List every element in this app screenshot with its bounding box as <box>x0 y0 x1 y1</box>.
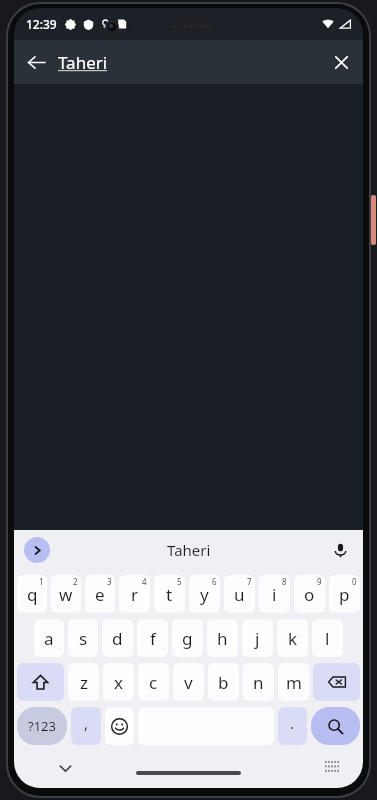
button[interactable]: Voice input <box>327 537 353 563</box>
staticText: h <box>217 627 228 650</box>
button[interactable]: ?123 <box>17 707 67 745</box>
button[interactable]: Taheri <box>153 534 225 566</box>
staticText: q <box>27 583 38 606</box>
button[interactable]: f <box>137 619 168 657</box>
button[interactable]: k <box>277 619 308 657</box>
staticText: f <box>150 627 156 650</box>
staticText: e <box>95 583 105 606</box>
button[interactable]: Backspace <box>313 663 360 701</box>
staticText: 7 <box>247 576 252 587</box>
staticText: 3 <box>107 576 112 587</box>
staticText: k <box>288 627 298 650</box>
staticText: 0 <box>352 576 357 587</box>
button[interactable]: y <box>189 575 220 613</box>
staticText: m <box>286 671 302 694</box>
staticText: w <box>59 583 73 606</box>
button[interactable]: a <box>34 619 64 657</box>
staticText: l <box>325 627 330 650</box>
staticText: g <box>182 627 193 650</box>
button[interactable]: b <box>208 663 239 701</box>
staticText: v <box>184 671 193 694</box>
staticText: i <box>272 583 277 606</box>
staticText: Taheri <box>58 51 108 74</box>
staticText: . <box>290 713 295 733</box>
staticText: 6 <box>212 576 217 587</box>
staticText: x <box>114 671 123 694</box>
button[interactable]: Emoji <box>105 707 134 745</box>
staticText: ?123 <box>28 717 56 735</box>
staticText: 1 <box>39 576 44 587</box>
staticText: s <box>79 627 88 650</box>
staticText: d <box>112 627 123 650</box>
staticText: 2 <box>73 576 78 587</box>
button[interactable]: Back <box>14 40 58 84</box>
button[interactable]: Shift <box>17 663 64 701</box>
staticText: , <box>84 713 89 733</box>
button[interactable]: h <box>207 619 238 657</box>
staticText: b <box>218 671 229 694</box>
button[interactable]: Search <box>311 707 360 745</box>
button[interactable]: g <box>172 619 203 657</box>
staticText: 12:39 <box>26 16 57 32</box>
staticText: Taheri <box>167 540 211 560</box>
staticText: 8 <box>282 576 287 587</box>
staticText: a <box>44 627 54 650</box>
staticText: o <box>304 583 315 606</box>
button[interactable]: i <box>259 575 290 613</box>
staticText: u <box>234 583 245 606</box>
staticText: j <box>255 627 260 650</box>
staticText: n <box>253 671 264 694</box>
button[interactable]: w <box>51 575 81 613</box>
button[interactable]: u <box>224 575 255 613</box>
button[interactable]: d <box>102 619 133 657</box>
button[interactable]: t <box>154 575 185 613</box>
button[interactable]: Switch keyboard <box>319 755 345 781</box>
button[interactable]: v <box>173 663 204 701</box>
button[interactable]: , <box>71 707 101 745</box>
button[interactable]: j <box>242 619 273 657</box>
button[interactable]: e <box>85 575 115 613</box>
button[interactable]: l <box>312 619 343 657</box>
button[interactable]: n <box>243 663 274 701</box>
button[interactable]: p <box>329 575 360 613</box>
button[interactable]: x <box>103 663 134 701</box>
button[interactable]: q <box>17 575 47 613</box>
staticText: y <box>200 583 209 606</box>
button[interactable]: m <box>278 663 309 701</box>
staticText: z <box>80 671 88 694</box>
staticText: 5 <box>177 576 182 587</box>
button[interactable]: Taheri <box>58 40 319 84</box>
button[interactable]: Clear <box>319 40 363 84</box>
button[interactable]: r <box>119 575 150 613</box>
button[interactable]: s <box>68 619 98 657</box>
staticText: c <box>149 671 158 694</box>
staticText: t <box>166 583 173 606</box>
button[interactable]: . <box>278 707 307 745</box>
button[interactable]: Hide keyboard <box>50 753 80 783</box>
staticText: 4 <box>142 576 147 587</box>
staticText: 9 <box>317 576 322 587</box>
staticText: r <box>131 583 139 606</box>
staticText: p <box>339 583 350 606</box>
button[interactable]: o <box>294 575 325 613</box>
button[interactable]: z <box>68 663 99 701</box>
button[interactable]: More suggestions <box>24 537 50 563</box>
button[interactable]: c <box>138 663 169 701</box>
